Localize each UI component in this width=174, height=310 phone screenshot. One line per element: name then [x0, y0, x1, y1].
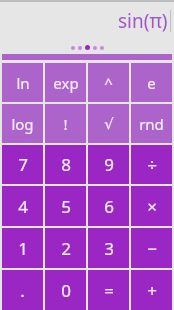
staticText: 4 [18, 195, 28, 218]
button[interactable]: 3 [88, 228, 129, 268]
button[interactable]: 5 [45, 186, 86, 226]
button[interactable]: 6 [88, 186, 129, 226]
staticText: 7 [18, 153, 28, 176]
button[interactable]: rnd [131, 104, 172, 143]
staticText: = [104, 279, 114, 302]
staticText: + [147, 279, 157, 302]
button[interactable]: 1 [2, 228, 43, 268]
button[interactable]: exp [45, 63, 86, 102]
staticText: rnd [139, 114, 164, 134]
button[interactable]: Subtract [131, 228, 172, 268]
staticText: 6 [104, 195, 114, 218]
staticText: 8 [61, 153, 71, 176]
button[interactable]: 8 [45, 145, 86, 184]
button[interactable]: Add [131, 270, 172, 310]
button[interactable]: Decimal point [2, 270, 43, 310]
button[interactable]: Multiply [131, 186, 172, 226]
staticText: 1 [18, 237, 28, 260]
staticText: ln [16, 73, 30, 93]
button[interactable]: 7 [2, 145, 43, 184]
button[interactable]: Power [88, 63, 129, 102]
button[interactable]: Divide [131, 145, 172, 184]
button[interactable]: Factorial [45, 104, 86, 143]
staticText: √ [104, 115, 114, 132]
staticText: ^ [104, 73, 113, 93]
staticText: 0 [61, 279, 71, 302]
staticText: 9 [104, 153, 114, 176]
button[interactable]: e [131, 63, 172, 102]
staticText: 2 [61, 237, 71, 260]
staticText: . [20, 279, 25, 302]
button[interactable]: ln [2, 63, 43, 102]
button[interactable]: log [2, 104, 43, 143]
staticText: × [147, 195, 157, 218]
staticText: log [11, 114, 34, 134]
button[interactable]: 9 [88, 145, 129, 184]
staticText: ÷ [147, 153, 157, 176]
button[interactable]: Square root [88, 104, 129, 143]
staticText: − [147, 237, 157, 260]
button[interactable]: 0 [45, 270, 86, 310]
button[interactable]: 4 [2, 186, 43, 226]
staticText: e [147, 73, 156, 93]
staticText: ! [63, 114, 68, 134]
button[interactable]: 2 [45, 228, 86, 268]
staticText: sin(π) [118, 8, 168, 34]
button[interactable]: Equals [88, 270, 129, 310]
staticText: 5 [61, 195, 71, 218]
staticText: exp [53, 73, 79, 93]
staticText: 3 [104, 237, 114, 260]
